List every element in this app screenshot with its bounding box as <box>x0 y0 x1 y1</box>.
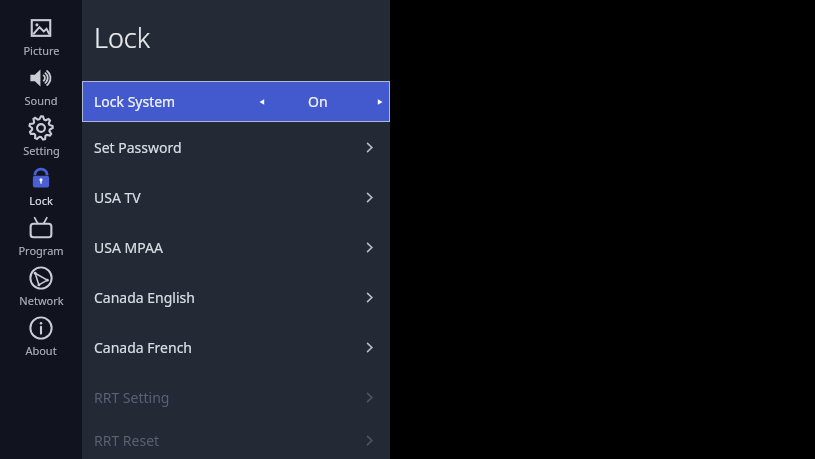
button[interactable]: RRT Setting <box>82 372 390 422</box>
button[interactable]: Lock System <box>82 81 390 122</box>
staticText: RRT Setting <box>94 388 170 407</box>
button[interactable]: Program <box>0 214 82 264</box>
staticText: On <box>308 92 328 111</box>
staticText: Picture <box>23 43 60 58</box>
staticText: USA TV <box>94 188 141 207</box>
button[interactable]: Previous value <box>257 97 267 107</box>
staticText: Sound <box>24 93 58 108</box>
staticText: USA MPAA <box>94 238 163 257</box>
staticText: Lock System <box>94 92 176 111</box>
staticText: Network <box>19 293 64 308</box>
staticText: Program <box>18 243 64 258</box>
button[interactable]: Picture <box>0 14 82 64</box>
staticText: Canada French <box>94 338 192 357</box>
button[interactable]: USA TV <box>82 172 390 222</box>
button[interactable]: Next value <box>375 97 385 107</box>
button[interactable]: Setting <box>0 114 82 164</box>
staticText: Canada English <box>94 288 195 307</box>
staticText: About <box>25 343 57 358</box>
button[interactable]: Sound <box>0 64 82 114</box>
button[interactable]: Canada French <box>82 322 390 372</box>
button[interactable]: USA MPAA <box>82 222 390 272</box>
button[interactable]: About <box>0 314 82 364</box>
staticText: RRT Reset <box>94 431 160 450</box>
staticText: Lock <box>94 19 151 56</box>
staticText: Lock <box>29 193 53 208</box>
button[interactable]: Set Password <box>82 122 390 172</box>
button[interactable]: Network <box>0 264 82 314</box>
staticText: Setting <box>23 143 60 158</box>
staticText: Set Password <box>94 138 182 157</box>
button[interactable]: RRT Reset <box>82 422 390 459</box>
button[interactable]: Canada English <box>82 272 390 322</box>
button[interactable]: Lock <box>0 164 82 214</box>
